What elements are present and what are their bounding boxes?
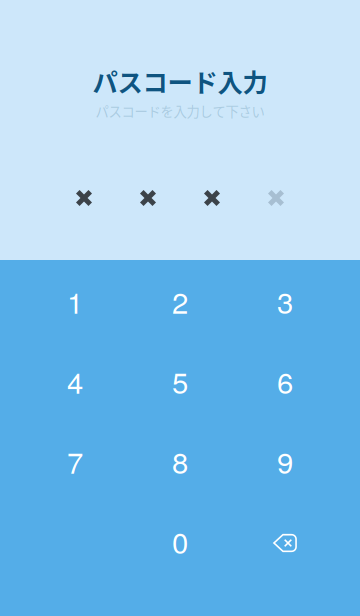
staticText: パスコードを入力して下さい [95,101,264,121]
button[interactable]: 4 [22,343,127,423]
staticText: 5 [172,360,188,402]
staticText: パスコード入力 [92,63,267,99]
staticText: 2 [172,280,188,322]
button[interactable]: 6 [232,343,337,423]
button[interactable]: 2 [127,263,232,343]
staticText: 0 [172,520,188,562]
staticText: 9 [277,440,293,482]
staticText: 6 [277,360,293,402]
button[interactable]: 1 [22,263,127,343]
button[interactable]: 7 [22,423,127,503]
button[interactable]: 8 [127,423,232,503]
staticText: 1 [67,280,83,322]
staticText: 4 [67,360,83,402]
staticText: 3 [277,280,293,322]
button[interactable]: 5 [127,343,232,423]
button[interactable]: 9 [232,423,337,503]
button[interactable]: Delete [232,503,337,583]
button[interactable]: 3 [232,263,337,343]
staticText: 8 [172,440,188,482]
button[interactable]: 0 [127,503,232,583]
staticText: 7 [67,440,83,482]
